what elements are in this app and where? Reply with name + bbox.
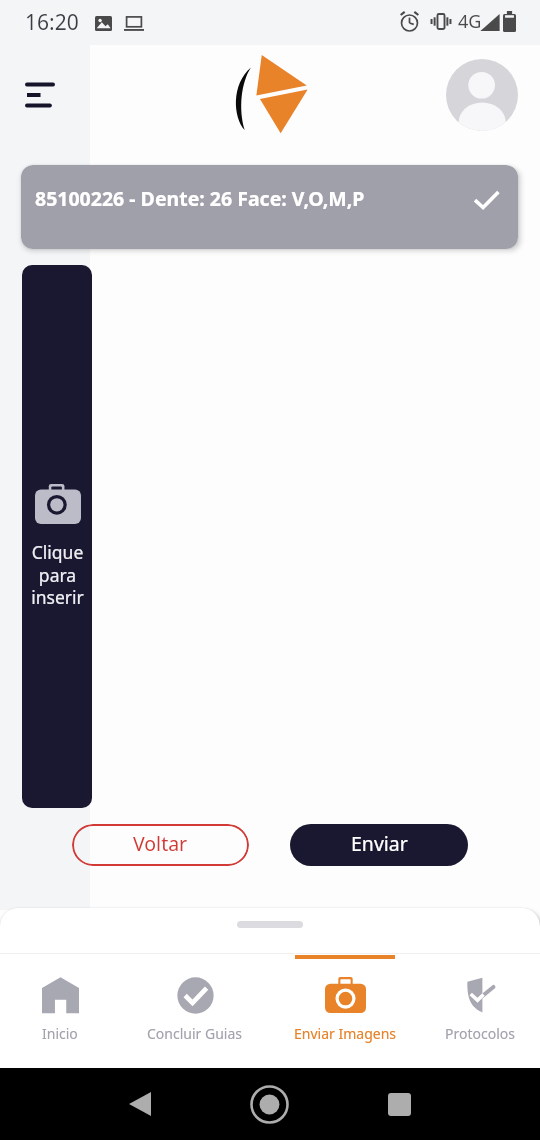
- button[interactable]: Home: [247, 1082, 291, 1126]
- button[interactable]: Clique para inserir: [22, 265, 92, 808]
- button[interactable]: Enviar: [290, 824, 468, 866]
- button[interactable]: Concluir Guias: [120, 953, 270, 1068]
- staticText: 85100226 - Dente: 26 Face: V,O,M,P: [35, 185, 365, 212]
- staticText: Enviar: [351, 830, 408, 857]
- button[interactable]: Menu: [18, 73, 62, 117]
- button[interactable]: Inicio: [0, 953, 120, 1068]
- button[interactable]: Back: [118, 1082, 162, 1126]
- button[interactable]: Voltar: [72, 824, 249, 866]
- staticText: Enviar Imagens: [294, 1024, 396, 1043]
- staticText: Protocolos: [445, 1024, 515, 1043]
- staticText: Voltar: [133, 830, 188, 857]
- button[interactable]: 85100226 - Dente: 26 Face: V,O,M,P: [21, 165, 518, 249]
- staticText: 4G: [458, 9, 482, 34]
- staticText: 16:20: [25, 8, 79, 37]
- staticText: Clique para inserir: [31, 540, 84, 609]
- button[interactable]: Recents: [377, 1082, 421, 1126]
- button[interactable]: Enviar Imagens: [270, 953, 420, 1068]
- button[interactable]: Profile: [446, 59, 518, 131]
- staticText: Concluir Guias: [147, 1024, 243, 1043]
- button[interactable]: Protocolos: [420, 953, 540, 1068]
- staticText: Inicio: [42, 1024, 78, 1043]
